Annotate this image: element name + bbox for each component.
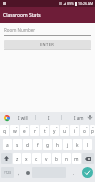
staticText: 8 <box>76 125 78 128</box>
staticText: Room Number <box>4 27 36 33</box>
staticText: f <box>37 142 39 149</box>
staticText: x <box>25 156 28 163</box>
button[interactable]: . <box>66 167 81 178</box>
staticText: I am <box>74 115 84 121</box>
staticText: t <box>44 128 46 135</box>
button[interactable]: g <box>43 139 52 150</box>
button[interactable]: I <box>36 112 61 123</box>
staticText: . <box>73 170 75 176</box>
staticText: I will <box>18 115 28 121</box>
button[interactable] <box>4 115 10 121</box>
staticText: d <box>26 142 29 149</box>
staticText: 7 <box>66 125 68 128</box>
button[interactable]: c <box>32 153 41 164</box>
button[interactable]: m <box>72 153 81 164</box>
staticText: e <box>23 128 26 135</box>
button[interactable]: n <box>62 153 71 164</box>
staticText: 5 <box>46 125 48 128</box>
button[interactable]: r <box>30 125 39 136</box>
staticText: b <box>55 156 58 163</box>
staticText: o <box>83 128 86 135</box>
button[interactable]: o <box>80 125 89 136</box>
staticText: 3 <box>26 125 28 128</box>
staticText: I <box>48 115 50 121</box>
staticText: 89% <box>67 1 74 6</box>
staticText: , <box>18 170 20 176</box>
staticText: k <box>76 142 79 149</box>
staticText: 10:26 AM <box>78 1 94 6</box>
button[interactable]: u <box>60 125 69 136</box>
staticText: n <box>65 156 68 163</box>
staticText: 4 <box>36 125 38 128</box>
button[interactable]: f <box>33 139 42 150</box>
staticText: m <box>74 156 79 163</box>
button[interactable]: v <box>42 153 51 164</box>
button[interactable] <box>1 153 12 164</box>
button[interactable]: e <box>20 125 29 136</box>
staticText: 0 <box>92 125 94 128</box>
staticText: a <box>6 142 9 149</box>
staticText: 2 <box>16 125 18 128</box>
button[interactable]: t <box>40 125 49 136</box>
button[interactable] <box>82 153 94 164</box>
button[interactable]: ?123 <box>1 167 14 178</box>
staticText: u <box>63 128 66 135</box>
button[interactable]: s <box>13 139 22 150</box>
staticText: 6 <box>56 125 58 128</box>
button[interactable]: I will <box>10 112 35 123</box>
staticText: p <box>91 128 94 135</box>
staticText: v <box>45 156 48 163</box>
button[interactable]: i <box>70 125 79 136</box>
button[interactable]: x <box>22 153 31 164</box>
button[interactable]: b <box>52 153 61 164</box>
button[interactable]: h <box>53 139 62 150</box>
staticText: g <box>46 142 49 149</box>
staticText: l <box>87 142 89 149</box>
button[interactable]: z <box>13 153 21 164</box>
staticText: ENTER <box>40 42 55 47</box>
button[interactable]: p <box>90 125 95 136</box>
staticText: z <box>16 156 19 163</box>
staticText: ?123 <box>4 171 11 175</box>
button[interactable]: I am <box>62 112 95 123</box>
staticText: h <box>56 142 59 149</box>
button[interactable]: d <box>23 139 32 150</box>
button[interactable]: j <box>63 139 72 150</box>
staticText: w <box>13 128 17 135</box>
button[interactable]: k <box>73 139 82 150</box>
button[interactable]: , <box>14 167 24 178</box>
staticText: r <box>34 128 36 135</box>
staticText: j <box>67 142 69 149</box>
button[interactable] <box>81 167 94 178</box>
staticText: c <box>35 156 38 163</box>
staticText: q <box>3 128 6 135</box>
staticText: y <box>53 128 56 135</box>
staticText: 1 <box>6 125 8 128</box>
button[interactable]: a <box>3 139 12 150</box>
staticText: s <box>16 142 19 149</box>
button[interactable]: ENTER <box>4 40 91 49</box>
staticText: 9 <box>86 125 88 128</box>
button[interactable]: y <box>50 125 59 136</box>
staticText: i <box>74 128 76 135</box>
button[interactable]: l <box>83 139 92 150</box>
button[interactable]: q <box>0 125 9 136</box>
staticText: Classroom Stats <box>3 12 41 19</box>
button[interactable] <box>24 167 32 178</box>
button[interactable]: w <box>10 125 19 136</box>
